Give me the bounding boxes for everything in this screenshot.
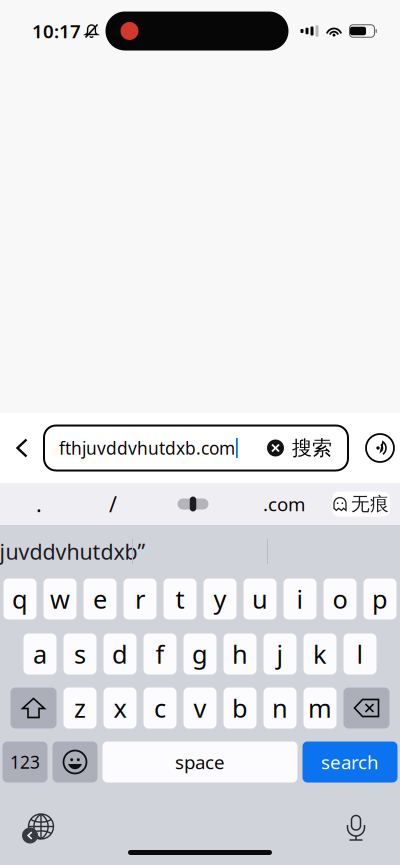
button[interactable]: Shift (10, 687, 56, 728)
button[interactable]: t (163, 578, 196, 619)
staticText: r (135, 582, 145, 616)
staticText: y (213, 582, 226, 616)
button[interactable]: c (143, 687, 176, 728)
staticText: b (232, 691, 248, 725)
button[interactable]: / (84, 483, 142, 525)
button[interactable]: j (263, 633, 296, 674)
staticText: g (192, 637, 208, 671)
staticText: . (36, 490, 42, 518)
staticText: m (308, 691, 332, 725)
button[interactable]: Back (0, 425, 44, 470)
staticText: search (321, 750, 379, 774)
staticText: 10:17 (32, 19, 81, 43)
staticText: 搜索 (292, 436, 332, 460)
staticText: f (155, 637, 164, 671)
button[interactable]: Emoji (52, 741, 97, 782)
staticText: s (74, 637, 86, 671)
button[interactable]: b (223, 687, 256, 728)
button[interactable]: v (183, 687, 216, 728)
staticText: / (109, 490, 117, 518)
staticText: fthjuvddvhutdxb.com (59, 436, 235, 459)
button[interactable]: d (103, 633, 136, 674)
button[interactable]: Listen to page (360, 425, 400, 470)
button[interactable]: f (143, 633, 176, 674)
button[interactable]: g (183, 633, 216, 674)
staticText: h (232, 637, 248, 671)
staticText: n (272, 691, 288, 725)
staticText: z (74, 691, 86, 725)
button[interactable]: e (83, 578, 116, 619)
staticText: 无痕 (351, 492, 389, 515)
button[interactable]: u (243, 578, 276, 619)
button[interactable]: space (102, 741, 297, 782)
button[interactable]: Clear text (267, 439, 284, 456)
button[interactable]: n (263, 687, 296, 728)
button[interactable]: 无痕 (332, 491, 390, 516)
staticText: .com (263, 492, 305, 516)
staticText: space (175, 750, 225, 774)
button[interactable]: Move cursor (142, 483, 244, 525)
button[interactable]: Dictate (334, 805, 378, 849)
staticText: e (93, 582, 107, 616)
staticText: p (372, 582, 388, 616)
button[interactable]: 123 (2, 741, 47, 782)
staticText: c (154, 691, 166, 725)
button[interactable]: 搜索 (284, 426, 340, 470)
button[interactable]: r (123, 578, 156, 619)
staticText: w (50, 582, 70, 616)
staticText: j (276, 637, 283, 671)
staticText: x (113, 691, 126, 725)
button[interactable]: hjuvddvhutdxb” (0, 525, 132, 578)
button[interactable]: .com (244, 483, 324, 525)
staticText: k (313, 637, 327, 671)
staticText: d (112, 637, 128, 671)
button[interactable]: search (302, 741, 397, 782)
staticText: t (175, 582, 184, 616)
button[interactable]: . (0, 483, 84, 525)
staticText: hjuvddvhutdxb” (0, 537, 145, 566)
staticText: l (356, 637, 363, 671)
staticText: o (332, 582, 347, 616)
button[interactable]: q (3, 578, 36, 619)
button[interactable]: z (63, 687, 96, 728)
button[interactable]: m (303, 687, 336, 728)
button[interactable]: w (43, 578, 76, 619)
staticText: a (33, 637, 47, 671)
button[interactable]: Change keyboard (18, 805, 62, 849)
button[interactable]: i (283, 578, 316, 619)
button[interactable]: Delete (343, 687, 389, 728)
button[interactable]: y (203, 578, 236, 619)
button[interactable]: p (363, 578, 396, 619)
staticText: v (193, 691, 206, 725)
staticText: 123 (10, 750, 40, 773)
staticText: i (296, 582, 303, 616)
button[interactable]: s (63, 633, 96, 674)
button[interactable]: l (343, 633, 376, 674)
button[interactable]: h (223, 633, 256, 674)
staticText: q (12, 582, 28, 616)
button[interactable]: o (323, 578, 356, 619)
button[interactable]: a (23, 633, 56, 674)
button[interactable]: k (303, 633, 336, 674)
staticText: u (252, 582, 268, 616)
button[interactable]: x (103, 687, 136, 728)
